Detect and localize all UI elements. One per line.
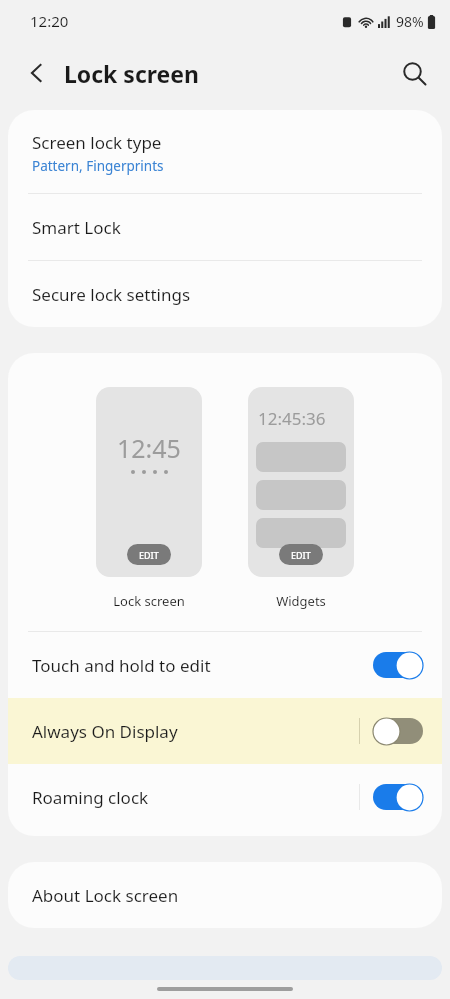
button[interactable]: On [372, 782, 424, 812]
button[interactable]: Touch and hold to edit [8, 632, 442, 698]
staticText: Always On Display [32, 720, 178, 743]
button[interactable]: Off [372, 716, 424, 746]
button[interactable]: Edit widgets [248, 387, 354, 577]
button[interactable]: EDIT [279, 544, 323, 565]
staticText: Widgets [276, 592, 326, 610]
staticText: About Lock screen [32, 884, 179, 907]
staticText: Secure lock settings [32, 283, 191, 306]
staticText: Touch and hold to edit [32, 654, 211, 677]
staticText: Smart Lock [32, 216, 121, 239]
button[interactable]: Search [392, 51, 436, 95]
staticText: EDIT [291, 549, 311, 561]
button[interactable]: About Lock screen [8, 862, 442, 928]
staticText: 12:45:36 [258, 407, 326, 430]
button[interactable]: Secure lock settings [8, 261, 442, 327]
staticText: 98% [396, 12, 424, 31]
staticText: Roaming clock [32, 786, 149, 809]
staticText: 12:20 [30, 11, 69, 31]
button[interactable]: On [372, 650, 424, 680]
staticText: Lock screen [64, 58, 199, 89]
button[interactable]: Smart Lock [8, 194, 442, 260]
button[interactable]: Edit lock screen [96, 387, 202, 577]
staticText: Lock screen [113, 592, 185, 610]
button[interactable]: Screen lock type [8, 110, 442, 193]
staticText: EDIT [139, 549, 159, 561]
button[interactable]: Back [16, 52, 58, 94]
button[interactable]: Roaming clock [8, 764, 442, 830]
button[interactable]: EDIT [127, 544, 171, 565]
staticText: 12:45 [117, 431, 181, 465]
staticText: Screen lock type [32, 131, 162, 154]
staticText: Pattern, Fingerprints [32, 157, 164, 175]
button[interactable]: Always On Display [8, 698, 442, 764]
